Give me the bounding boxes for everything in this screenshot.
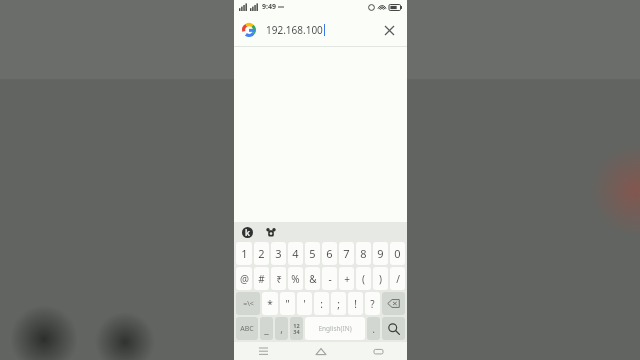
- button[interactable]: _: [260, 317, 273, 340]
- button[interactable]: -: [322, 267, 337, 290]
- staticText: _: [264, 322, 269, 336]
- staticText: 192.168.100: [266, 23, 323, 37]
- staticText: 1: [241, 246, 248, 261]
- staticText: 12 34: [293, 322, 300, 335]
- staticText: 3: [275, 246, 282, 261]
- staticText: 0: [394, 246, 401, 261]
- staticText: ": [285, 297, 290, 311]
- button[interactable]: 5: [305, 242, 320, 265]
- button[interactable]: Home: [308, 342, 334, 360]
- staticText: 7: [343, 246, 350, 261]
- button[interactable]: 2: [254, 242, 269, 265]
- staticText: ': [303, 297, 306, 311]
- button[interactable]: ": [280, 292, 295, 315]
- button[interactable]: 3: [271, 242, 286, 265]
- button[interactable]: 6: [322, 242, 337, 265]
- button[interactable]: ₹: [271, 267, 286, 290]
- button[interactable]: 9: [373, 242, 388, 265]
- staticText: ;: [337, 297, 340, 311]
- button[interactable]: ,: [275, 317, 288, 340]
- button[interactable]: !: [348, 292, 363, 315]
- button[interactable]: English(IN): [305, 317, 365, 340]
- button[interactable]: Keyboard menu: [238, 223, 256, 241]
- button[interactable]: @: [236, 267, 252, 290]
- button[interactable]: Recent apps: [250, 342, 276, 360]
- button[interactable]: %: [288, 267, 303, 290]
- button[interactable]: ': [297, 292, 312, 315]
- staticText: &: [309, 272, 317, 286]
- button[interactable]: ;: [331, 292, 346, 315]
- button[interactable]: Backspace: [382, 292, 405, 315]
- staticText: 9:49: [262, 2, 276, 12]
- staticText: 8: [360, 246, 367, 261]
- button[interactable]: 8: [356, 242, 371, 265]
- staticText: 2: [258, 246, 265, 261]
- staticText: +: [344, 272, 350, 286]
- button[interactable]: 12 34: [290, 317, 303, 340]
- staticText: ABC: [240, 324, 254, 334]
- staticText: ?: [370, 297, 375, 311]
- staticText: ,: [280, 322, 283, 336]
- button[interactable]: 192.168.100: [234, 14, 407, 46]
- staticText: 5: [309, 246, 316, 261]
- staticText: ₹: [276, 272, 282, 286]
- button[interactable]: 1: [236, 242, 252, 265]
- staticText: %: [291, 272, 300, 286]
- staticText: :: [320, 297, 323, 311]
- button[interactable]: 0: [390, 242, 405, 265]
- button[interactable]: =\<: [236, 292, 260, 315]
- button[interactable]: ): [373, 267, 388, 290]
- button[interactable]: (: [356, 267, 371, 290]
- button[interactable]: Search: [382, 317, 405, 340]
- button[interactable]: &: [305, 267, 320, 290]
- button[interactable]: +: [339, 267, 354, 290]
- button[interactable]: 4: [288, 242, 303, 265]
- button[interactable]: /: [390, 267, 405, 290]
- button[interactable]: ABC: [236, 317, 258, 340]
- button[interactable]: Back: [365, 342, 391, 360]
- staticText: *: [267, 297, 273, 311]
- button[interactable]: ?: [365, 292, 380, 315]
- staticText: -: [328, 272, 332, 286]
- staticText: k: [245, 227, 250, 238]
- staticText: #: [258, 272, 265, 286]
- staticText: English(IN): [318, 324, 352, 333]
- staticText: 6: [326, 246, 333, 261]
- button[interactable]: #: [254, 267, 269, 290]
- button[interactable]: 7: [339, 242, 354, 265]
- staticText: =\<: [243, 299, 254, 309]
- button[interactable]: *: [262, 292, 278, 315]
- staticText: /: [396, 272, 400, 286]
- staticText: (: [362, 272, 365, 286]
- button[interactable]: .: [367, 317, 380, 340]
- staticText: @: [240, 272, 249, 286]
- button[interactable]: :: [314, 292, 329, 315]
- staticText: !: [354, 297, 357, 311]
- button[interactable]: Clear: [379, 20, 399, 40]
- staticText: ): [379, 272, 382, 286]
- staticText: 4: [292, 246, 299, 261]
- staticText: .: [372, 322, 375, 336]
- staticText: 9: [377, 246, 384, 261]
- button[interactable]: Stickers: [262, 223, 280, 241]
